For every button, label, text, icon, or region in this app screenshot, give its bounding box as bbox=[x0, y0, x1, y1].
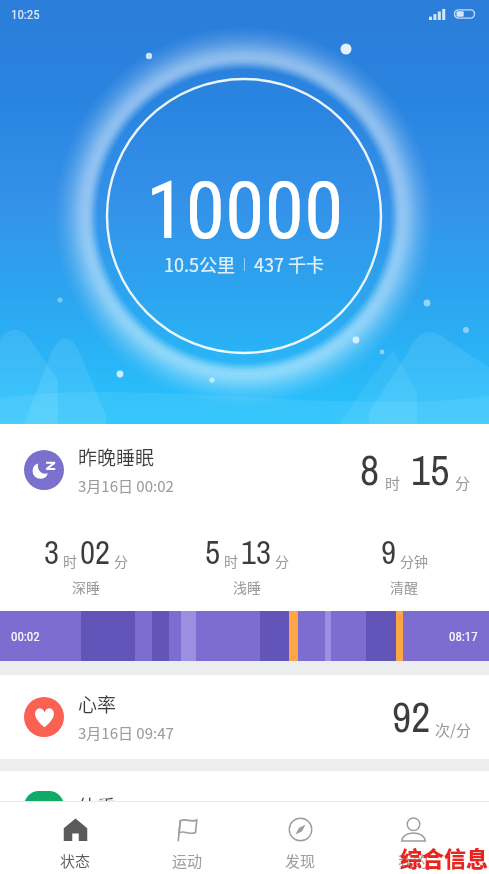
staticText: 运动 bbox=[172, 850, 203, 872]
staticText: 浅睡 bbox=[233, 577, 261, 597]
staticText: 我的 bbox=[398, 850, 429, 872]
staticText: 08:17 bbox=[449, 629, 478, 644]
staticText: 3 bbox=[44, 530, 60, 574]
button[interactable]: 心率 bbox=[0, 675, 489, 759]
staticText: 分 bbox=[455, 472, 471, 494]
button[interactable]: 5 bbox=[147, 530, 347, 597]
staticText: 分钟 bbox=[400, 551, 428, 571]
button[interactable]: Status bbox=[19, 801, 131, 874]
button[interactable]: 昨晚睡眠 bbox=[0, 424, 489, 516]
staticText: 92 bbox=[392, 689, 431, 746]
staticText: 15 bbox=[411, 442, 450, 499]
staticText: 02 bbox=[80, 530, 111, 574]
button[interactable]: 3 bbox=[0, 530, 186, 597]
staticText: 时 bbox=[224, 551, 238, 571]
button[interactable]: 9 bbox=[304, 530, 489, 597]
staticText: 9 bbox=[381, 530, 397, 574]
staticText: 10.5公里 bbox=[164, 251, 235, 277]
staticText: 分 bbox=[114, 551, 128, 571]
staticText: 深睡 bbox=[72, 577, 100, 597]
staticText: 10:25 bbox=[11, 7, 40, 22]
staticText: 状态 bbox=[60, 850, 91, 872]
button[interactable]: 00:02 bbox=[0, 611, 489, 661]
staticText: 体重 bbox=[78, 792, 117, 801]
staticText: 清醒 bbox=[390, 577, 418, 597]
staticText: 心率 bbox=[78, 690, 117, 718]
staticText: 综合信息 bbox=[400, 841, 489, 873]
button[interactable]: Workout bbox=[131, 801, 244, 874]
staticText: 发现 bbox=[285, 850, 316, 872]
staticText: 00:02 bbox=[11, 629, 40, 644]
staticText: 3月16日 00:02 bbox=[78, 475, 174, 497]
staticText: 分 bbox=[275, 551, 289, 571]
staticText: 昨晚睡眠 bbox=[78, 443, 155, 471]
staticText: 437 千卡 bbox=[254, 251, 325, 277]
staticText: 时 bbox=[63, 551, 77, 571]
staticText: 8 bbox=[360, 442, 380, 499]
staticText: 5 bbox=[205, 530, 221, 574]
button[interactable]: Discover bbox=[244, 801, 357, 874]
button[interactable]: 体重 bbox=[0, 771, 489, 801]
staticText: 3月16日 09:47 bbox=[78, 722, 174, 744]
button[interactable]: Profile bbox=[357, 801, 470, 874]
staticText: 时 bbox=[385, 472, 401, 494]
staticText: 10000 bbox=[146, 164, 344, 258]
staticText: 次/分 bbox=[435, 719, 471, 741]
staticText: 13 bbox=[241, 530, 272, 574]
